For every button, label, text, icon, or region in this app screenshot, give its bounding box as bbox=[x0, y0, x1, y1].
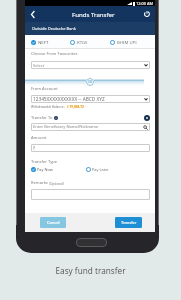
staticText: Easy fund transfer bbox=[0, 265, 181, 276]
staticText: Remarks bbox=[31, 180, 48, 186]
staticText: Amount bbox=[31, 135, 47, 141]
button[interactable]: NEFT bbox=[31, 39, 70, 45]
staticText: (Optional) bbox=[49, 182, 64, 186]
button[interactable]: Add beneficiary bbox=[144, 115, 150, 121]
staticText: BHIM UPI bbox=[117, 39, 137, 45]
staticText: Withdrawable Balance : bbox=[31, 105, 66, 109]
button[interactable]: Pay Later bbox=[86, 167, 150, 172]
staticText: ₹ bbox=[33, 146, 36, 151]
staticText: ₹ 19,868.72 bbox=[67, 105, 84, 109]
button[interactable]: BHIM UPI bbox=[110, 39, 152, 45]
staticText: Transfer Type bbox=[31, 159, 58, 165]
button[interactable]: Transfer bbox=[115, 217, 142, 228]
staticText: Enter Beneficiary Name/Nickname bbox=[33, 124, 99, 130]
staticText: NEFT bbox=[38, 39, 49, 45]
staticText: Transfer bbox=[121, 220, 137, 225]
button[interactable]: Pay Now bbox=[31, 167, 86, 172]
staticText: 12:00 AM bbox=[136, 1, 153, 6]
button[interactable]: Back bbox=[25, 6, 41, 22]
staticText: From Account bbox=[31, 86, 58, 92]
staticText: RTGS bbox=[77, 39, 88, 45]
staticText: Funds Transfer bbox=[72, 10, 115, 18]
button[interactable]: Cancel bbox=[40, 217, 66, 228]
staticText: Cancel bbox=[47, 220, 60, 225]
staticText: Choose From Favourites bbox=[31, 51, 78, 57]
staticText: 12345XXXXXXXXXXX -- ABCD XYZ bbox=[33, 96, 105, 102]
staticText: OR bbox=[88, 80, 93, 84]
staticText: Pay Now bbox=[37, 167, 53, 172]
staticText: Outside Deutsche Bank bbox=[32, 26, 76, 31]
button[interactable]: Logout bbox=[139, 6, 155, 22]
staticText: Select bbox=[33, 63, 45, 68]
staticText: Pay Later bbox=[92, 167, 109, 172]
staticText: Transfer To bbox=[31, 115, 53, 121]
button[interactable]: RTGS bbox=[70, 39, 110, 45]
